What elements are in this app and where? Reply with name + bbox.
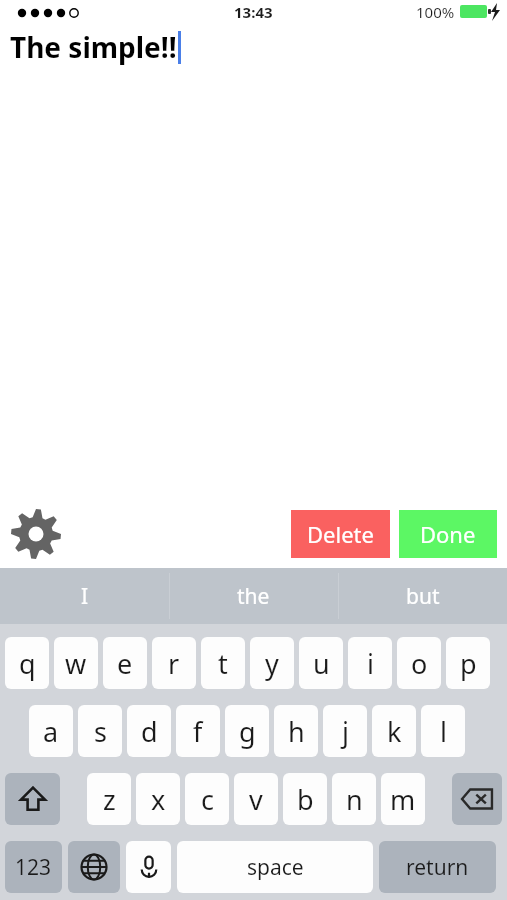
staticText: i [367, 645, 374, 682]
staticText: u [313, 645, 330, 682]
button[interactable]: f [176, 705, 220, 757]
staticText: m [390, 781, 416, 818]
staticText: 13:43 [234, 2, 273, 22]
button[interactable]: a [29, 705, 73, 757]
button[interactable]: Shift [5, 773, 60, 825]
staticText: o [411, 645, 428, 682]
staticText: n [346, 781, 363, 818]
button[interactable]: w [54, 637, 98, 689]
staticText: s [94, 713, 107, 750]
button[interactable]: Next keyboard [68, 841, 120, 893]
button[interactable]: Backspace [452, 773, 502, 825]
staticText: j [342, 713, 349, 750]
button[interactable]: i [348, 637, 392, 689]
staticText: b [297, 781, 314, 818]
staticText: g [239, 713, 256, 750]
staticText: p [460, 645, 477, 682]
button[interactable]: j [323, 705, 367, 757]
staticText: Delete [307, 519, 374, 549]
staticText: d [141, 713, 158, 750]
button[interactable]: g [225, 705, 269, 757]
staticText: I [81, 582, 89, 611]
button[interactable]: e [103, 637, 147, 689]
staticText: h [288, 713, 305, 750]
staticText: 100% [416, 2, 455, 22]
staticText: return [406, 853, 469, 882]
button[interactable]: d [127, 705, 171, 757]
staticText: l [440, 713, 447, 750]
button[interactable]: q [5, 637, 49, 689]
button[interactable]: l [421, 705, 465, 757]
staticText: r [168, 645, 180, 682]
staticText: c [201, 781, 214, 818]
staticText: q [19, 645, 36, 682]
staticText: z [103, 781, 116, 818]
button[interactable]: Dictation [126, 841, 171, 893]
button[interactable]: x [136, 773, 180, 825]
button[interactable]: c [185, 773, 229, 825]
button[interactable]: t [201, 637, 245, 689]
button[interactable]: I [0, 568, 169, 624]
button[interactable]: r [152, 637, 196, 689]
button[interactable]: o [397, 637, 441, 689]
button[interactable]: Settings [10, 508, 62, 560]
staticText: Done [420, 519, 476, 549]
staticText: a [43, 713, 59, 750]
button[interactable]: but [338, 568, 507, 624]
staticText: y [265, 645, 279, 682]
button[interactable]: h [274, 705, 318, 757]
button[interactable]: 123 [5, 841, 62, 893]
staticText: 123 [15, 853, 52, 882]
staticText: e [117, 645, 133, 682]
button[interactable]: p [446, 637, 490, 689]
staticText: w [65, 645, 87, 682]
staticText: f [193, 713, 203, 750]
button[interactable]: k [372, 705, 416, 757]
staticText: v [249, 781, 263, 818]
button[interactable]: v [234, 773, 278, 825]
button[interactable]: z [87, 773, 131, 825]
button[interactable]: y [250, 637, 294, 689]
staticText: k [387, 713, 402, 750]
button[interactable]: space [177, 841, 373, 893]
staticText: t [218, 645, 228, 682]
button[interactable]: m [381, 773, 425, 825]
staticText: but [406, 582, 440, 611]
staticText: x [151, 781, 166, 818]
button[interactable]: b [283, 773, 327, 825]
staticText: the [237, 582, 270, 611]
button[interactable]: s [78, 705, 122, 757]
button[interactable]: Done [399, 510, 497, 558]
button[interactable]: Delete [291, 510, 390, 558]
button[interactable]: u [299, 637, 343, 689]
button[interactable]: return [379, 841, 496, 893]
button[interactable]: n [332, 773, 376, 825]
staticText: space [247, 853, 304, 882]
staticText: The simple!! [10, 28, 177, 66]
button[interactable]: the [169, 568, 338, 624]
